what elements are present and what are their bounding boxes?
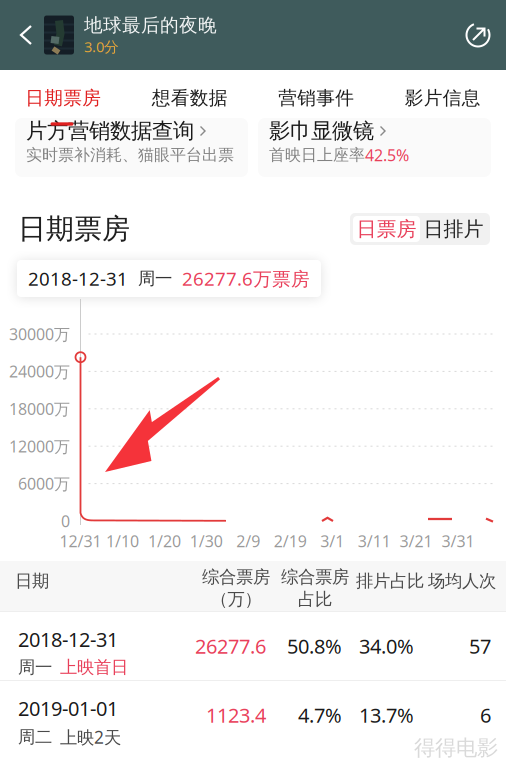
button[interactable]: 想看数据: [126, 70, 253, 118]
staticText: 24000万: [9, 361, 70, 382]
staticText: 2019-01-01: [18, 695, 118, 722]
staticText: 3/31: [442, 530, 475, 552]
staticText: 26277.6: [195, 633, 266, 659]
staticText: 13.7%: [359, 702, 414, 728]
staticText: 场均人次: [428, 570, 496, 592]
staticText: 首映日上座率: [269, 145, 365, 165]
staticText: 26277.6万票房: [182, 266, 310, 291]
button[interactable]: Back: [8, 0, 44, 70]
staticText: 实时票补消耗、猫眼平台出票: [26, 145, 234, 165]
button[interactable]: 2019-01-01: [0, 681, 506, 749]
staticText: 周一: [128, 268, 182, 289]
staticText: 营销事件: [278, 86, 354, 109]
staticText: 3/1: [320, 530, 344, 552]
button[interactable]: 影片信息: [379, 70, 506, 118]
staticText: 6000万: [18, 473, 70, 494]
staticText: 影巾显微镜: [269, 118, 374, 144]
staticText: 周二: [18, 726, 52, 748]
button[interactable]: 营销事件: [253, 70, 379, 118]
staticText: 日排片: [423, 217, 483, 241]
staticText: 2/9: [236, 530, 260, 552]
staticText: 3.0分: [84, 37, 119, 56]
button[interactable]: Share: [456, 0, 500, 70]
staticText: 4.7%: [298, 702, 342, 728]
staticText: 占比: [298, 588, 332, 610]
staticText: 综合票房: [281, 566, 349, 587]
staticText: 2018-12-31: [18, 626, 118, 653]
staticText: 0: [61, 510, 70, 532]
staticText: 1/30: [190, 530, 223, 552]
staticText: 日期票房: [25, 86, 101, 109]
staticText: 片方营销数据查询: [26, 118, 194, 144]
staticText: 日票房: [356, 217, 416, 241]
staticText: 2/19: [274, 530, 307, 552]
staticText: 12000万: [9, 436, 70, 457]
staticText: 日期票房: [18, 212, 130, 246]
staticText: 影片信息: [405, 86, 481, 109]
staticText: 57: [469, 633, 491, 659]
staticText: 上映首日: [60, 657, 128, 678]
button[interactable]: 日票房: [353, 216, 420, 242]
button[interactable]: 日期票房: [0, 70, 126, 118]
button[interactable]: 影巾显微镜: [258, 118, 491, 177]
staticText: 34.0%: [359, 633, 414, 659]
staticText: 1/20: [148, 530, 181, 552]
staticText: 3/21: [400, 530, 433, 552]
staticText: 日期: [15, 570, 49, 592]
staticText: 想看数据: [152, 86, 228, 109]
staticText: 周一: [18, 657, 52, 678]
staticText: 上映2天: [60, 726, 121, 749]
staticText: 排片占比: [356, 570, 424, 592]
staticText: 30000万: [9, 323, 70, 345]
staticText: 地球最后的夜晚: [84, 14, 217, 37]
staticText: 2018-12-31: [28, 266, 128, 291]
staticText: 6: [480, 702, 491, 728]
staticText: 得得电影: [414, 735, 498, 761]
staticText: 综合票房: [202, 566, 270, 587]
staticText: 1/10: [106, 530, 139, 552]
staticText: （万）: [210, 588, 261, 610]
button[interactable]: 2018-12-31: [0, 612, 506, 680]
staticText: 3/11: [358, 530, 391, 552]
staticText: 1123.4: [206, 702, 266, 728]
staticText: 42.5%: [365, 144, 409, 166]
staticText: 12/31: [59, 530, 101, 552]
button[interactable]: 日排片: [420, 216, 487, 242]
button[interactable]: 片方营销数据查询: [15, 118, 248, 177]
staticText: 50.8%: [287, 633, 342, 659]
staticText: 18000万: [9, 398, 70, 419]
